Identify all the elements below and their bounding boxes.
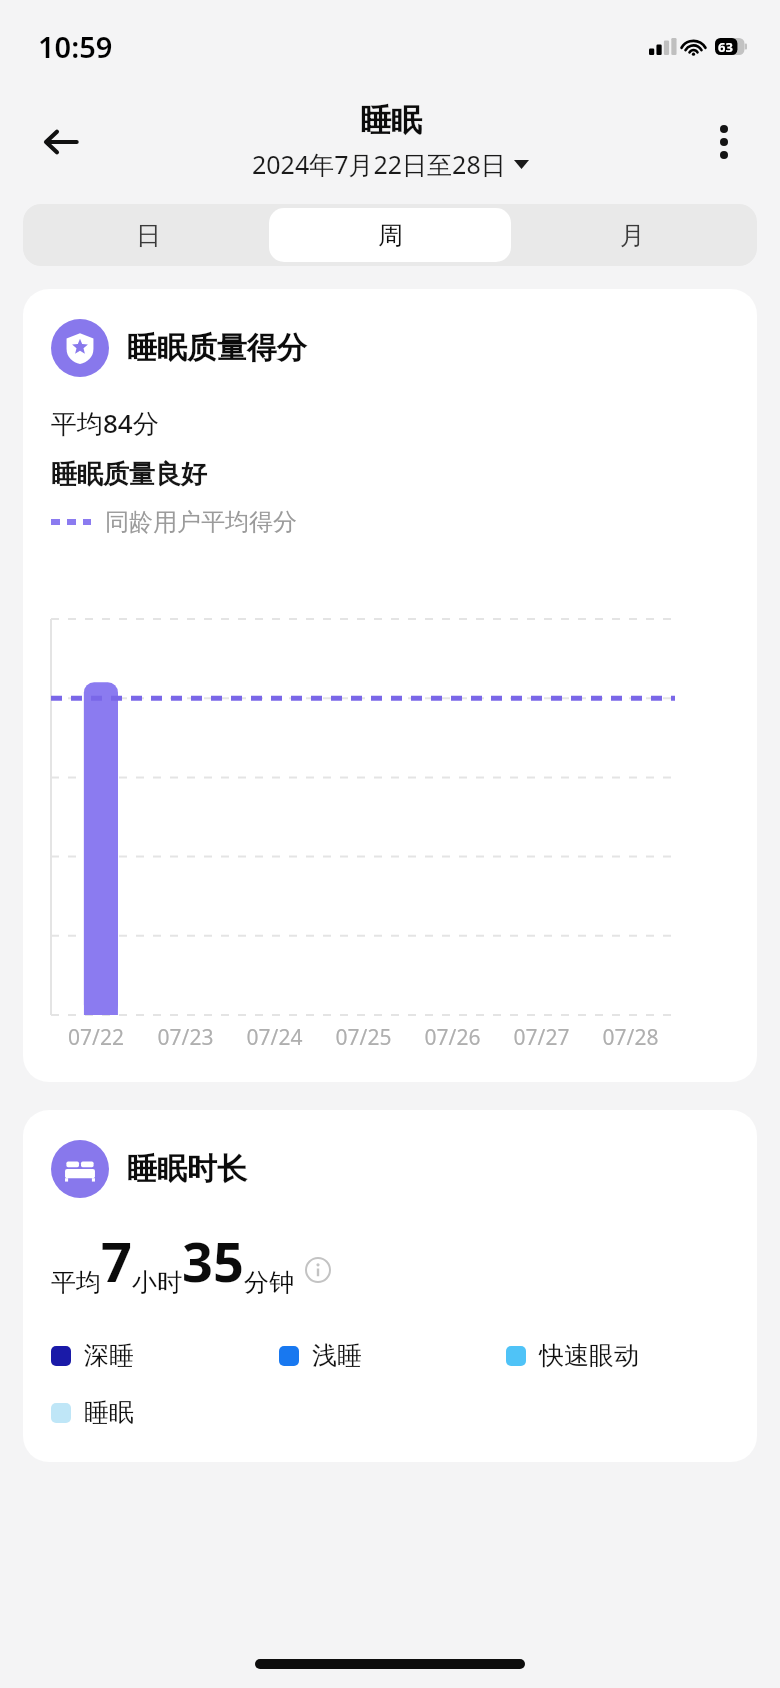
staticText: 07/27 <box>497 1023 586 1052</box>
staticText: 周 <box>378 220 403 251</box>
staticText: 小时 <box>132 1267 182 1298</box>
button[interactable]: 快速眼动 <box>506 1340 733 1371</box>
button[interactable]: 深睡 <box>51 1340 279 1371</box>
staticText: 月 <box>620 220 645 251</box>
staticText: 10:59 <box>38 27 113 66</box>
staticText: 分钟 <box>244 1267 294 1298</box>
staticText: 63 <box>718 38 733 55</box>
staticText: 07/24 <box>230 1023 319 1052</box>
button[interactable]: 2024年7月22日至28日 <box>248 145 533 183</box>
button[interactable]: 睡眠时长 <box>23 1110 757 1462</box>
button[interactable]: 周 <box>269 208 511 262</box>
staticText: 平均84分 <box>51 405 159 441</box>
staticText: 日 <box>136 220 161 251</box>
button[interactable]: Back <box>30 111 92 173</box>
staticText: 07/23 <box>141 1023 230 1052</box>
staticText: 睡眠时长 <box>127 1150 247 1188</box>
staticText: 07/28 <box>586 1023 675 1052</box>
staticText: 07/25 <box>319 1023 408 1052</box>
button[interactable]: Info <box>304 1256 332 1284</box>
staticText: 2024年7月22日至28日 <box>252 147 506 181</box>
staticText: 快速眼动 <box>539 1340 639 1371</box>
button[interactable]: More options <box>694 112 754 172</box>
button[interactable]: 月 <box>511 208 753 262</box>
staticText: 35 <box>182 1224 244 1298</box>
staticText: 07/22 <box>51 1023 141 1052</box>
button[interactable]: 睡眠 <box>51 1397 278 1428</box>
staticText: 07/26 <box>408 1023 497 1052</box>
staticText: 深睡 <box>84 1340 134 1371</box>
staticText: 同龄用户平均得分 <box>105 507 297 537</box>
staticText: 7 <box>101 1224 132 1298</box>
staticText: 浅睡 <box>312 1340 362 1371</box>
button[interactable]: 睡眠质量得分 <box>23 289 757 1082</box>
staticText: 睡眠 <box>360 101 422 140</box>
button[interactable]: 日 <box>27 208 269 262</box>
button[interactable]: 浅睡 <box>279 1340 506 1371</box>
staticText: 平均 <box>51 1267 101 1298</box>
staticText: 睡眠质量得分 <box>127 329 307 367</box>
staticText: 睡眠质量良好 <box>51 458 207 491</box>
staticText: 睡眠 <box>84 1397 134 1428</box>
